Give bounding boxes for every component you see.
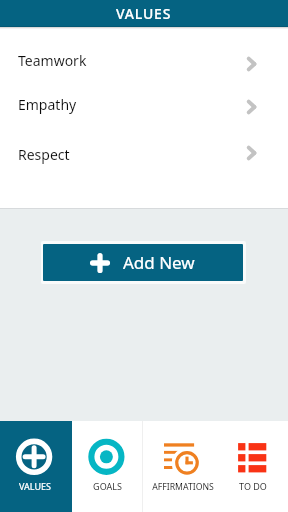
button[interactable]: TO DO xyxy=(216,421,288,512)
staticText: Teamwork xyxy=(18,51,87,70)
staticText: VALUES xyxy=(19,480,51,492)
button[interactable]: VALUES xyxy=(0,421,72,512)
staticText: Add New xyxy=(123,251,195,274)
other: Open Respect xyxy=(245,143,265,163)
button[interactable]: AFFIRMATIONS xyxy=(144,421,216,512)
other: Open Teamwork xyxy=(245,54,265,74)
button[interactable]: Add New xyxy=(43,244,243,281)
staticText: AFFIRMATIONS xyxy=(152,481,214,493)
staticText: Empathy xyxy=(18,95,77,114)
staticText: VALUES xyxy=(116,4,172,23)
staticText: GOALS xyxy=(93,480,122,492)
button[interactable]: Teamwork xyxy=(0,38,288,82)
staticText: TO DO xyxy=(239,480,267,492)
other: Open Empathy xyxy=(245,97,265,117)
button[interactable]: Empathy xyxy=(0,82,288,126)
button[interactable]: Respect xyxy=(0,132,288,176)
staticText: Respect xyxy=(18,145,70,164)
button[interactable]: GOALS xyxy=(72,421,144,512)
